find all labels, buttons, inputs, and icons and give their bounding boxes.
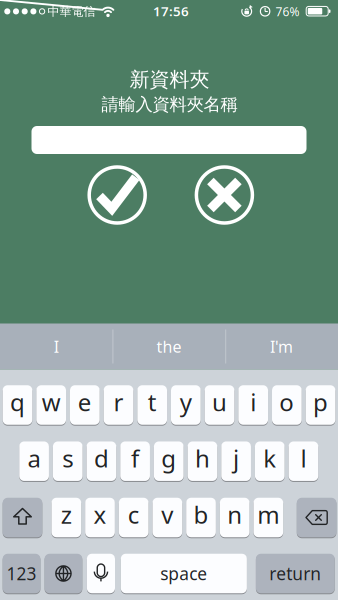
staticText: b [193, 499, 208, 530]
button[interactable] [87, 553, 115, 594]
staticText: g [161, 442, 176, 474]
button[interactable]: g [154, 441, 184, 481]
button[interactable]: p [306, 385, 335, 425]
staticText: z [61, 499, 72, 530]
button[interactable]: w [36, 385, 66, 425]
button[interactable] [297, 497, 336, 538]
staticText: u [212, 386, 227, 418]
button[interactable]: v [152, 497, 182, 538]
staticText: 新資料夾 [129, 67, 209, 92]
button[interactable]: y [171, 385, 201, 425]
staticText: I'm [270, 336, 293, 357]
staticText: q [10, 386, 25, 418]
button[interactable]: a [19, 441, 49, 481]
button[interactable]: l [289, 441, 318, 481]
staticText: 17:56 [153, 2, 189, 20]
staticText: 請輸入資料夾名稱 [101, 94, 237, 115]
button[interactable]: c [119, 497, 148, 538]
staticText: 123 [7, 562, 37, 585]
staticText: return [269, 562, 321, 585]
button[interactable]: the [114, 324, 224, 368]
staticText: v [161, 499, 173, 530]
button[interactable]: q [3, 385, 32, 425]
staticText: e [78, 386, 92, 418]
button[interactable]: I'm [227, 324, 337, 368]
button[interactable]: u [205, 385, 234, 425]
staticText: a [28, 442, 41, 474]
staticText: w [42, 386, 61, 418]
button[interactable] [31, 126, 306, 154]
staticText: s [62, 442, 73, 474]
button[interactable]: h [188, 441, 217, 481]
button[interactable]: n [220, 497, 250, 538]
staticText: space [160, 562, 207, 585]
staticText: I [54, 336, 59, 357]
button[interactable]: k [255, 441, 285, 481]
staticText: r [113, 386, 123, 418]
staticText: i [250, 386, 256, 418]
staticText: x [93, 499, 106, 530]
staticText: y [180, 386, 192, 418]
button[interactable] [3, 497, 42, 538]
button[interactable]: t [137, 385, 167, 425]
button[interactable]: e [70, 385, 100, 425]
button[interactable]: I [1, 324, 111, 368]
button[interactable]: o [272, 385, 302, 425]
button[interactable]: space [121, 553, 247, 594]
button[interactable]: i [238, 385, 268, 425]
staticText: j [233, 442, 239, 474]
button[interactable]: x [85, 497, 115, 538]
button[interactable]: d [87, 441, 116, 481]
staticText: the [156, 336, 181, 357]
button[interactable]: return [256, 553, 335, 594]
staticText: p [313, 386, 328, 418]
button[interactable] [87, 165, 147, 225]
staticText: l [300, 442, 306, 474]
staticText: 中華電信 [47, 4, 95, 19]
staticText: c [128, 499, 140, 530]
button[interactable]: j [221, 441, 251, 481]
button[interactable] [45, 553, 82, 594]
button[interactable]: 123 [3, 553, 40, 594]
staticText: n [227, 499, 242, 530]
button[interactable]: b [186, 497, 216, 538]
button[interactable]: z [51, 497, 81, 538]
button[interactable]: r [104, 385, 133, 425]
staticText: m [257, 499, 279, 530]
staticText: h [195, 442, 210, 474]
staticText: t [148, 386, 157, 418]
staticText: o [279, 386, 294, 418]
button[interactable]: f [120, 441, 150, 481]
button[interactable]: s [53, 441, 83, 481]
button[interactable] [194, 165, 254, 225]
staticText: f [131, 442, 139, 474]
button[interactable]: m [253, 497, 283, 538]
staticText: d [94, 442, 109, 474]
staticText: k [263, 442, 276, 474]
staticText: 76% [275, 4, 299, 19]
